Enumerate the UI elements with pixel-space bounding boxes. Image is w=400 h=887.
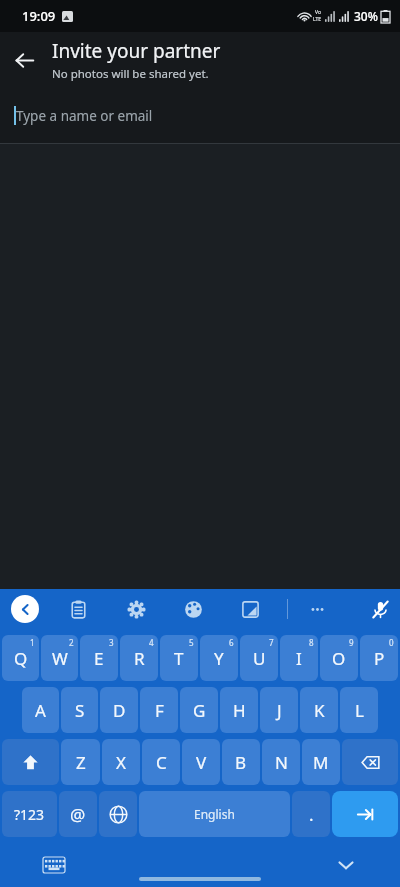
staticText: 0: [389, 637, 394, 648]
button[interactable]: U: [240, 635, 278, 681]
button[interactable]: F: [140, 687, 178, 733]
button[interactable]: C: [142, 739, 180, 785]
staticText: English: [194, 806, 235, 822]
button[interactable]: J: [260, 687, 298, 733]
button[interactable]: English: [139, 791, 290, 837]
button[interactable]: O: [320, 635, 358, 681]
staticText: F: [155, 699, 164, 722]
staticText: N: [275, 751, 288, 774]
button[interactable]: E: [80, 635, 118, 681]
button[interactable]: R: [120, 635, 158, 681]
button[interactable]: T: [160, 635, 198, 681]
staticText: V: [196, 751, 207, 774]
staticText: Vo: [315, 9, 321, 16]
staticText: LTE: [313, 16, 322, 23]
staticText: ?123: [14, 805, 45, 824]
button[interactable]: Type a name or email: [0, 88, 400, 143]
staticText: B: [235, 751, 247, 774]
button[interactable]: I: [280, 635, 318, 681]
button[interactable]: Previous: [11, 595, 39, 623]
button[interactable]: Shift: [2, 739, 59, 785]
staticText: 3: [109, 637, 114, 648]
staticText: 30%: [354, 8, 378, 24]
staticText: E: [94, 647, 104, 670]
button[interactable]: Z: [61, 739, 100, 785]
button[interactable]: Next: [332, 791, 398, 837]
staticText: H: [233, 699, 246, 722]
button[interactable]: G: [180, 687, 218, 733]
button[interactable]: N: [262, 739, 300, 785]
button[interactable]: K: [300, 687, 338, 733]
staticText: Y: [214, 647, 224, 670]
button[interactable]: Hide keyboard: [328, 847, 364, 883]
button[interactable]: Resize keyboard: [232, 591, 268, 627]
button[interactable]: S: [61, 687, 98, 733]
staticText: X: [116, 751, 126, 774]
button[interactable]: Switch keyboard: [36, 847, 72, 883]
staticText: .: [309, 803, 314, 826]
staticText: 8: [309, 637, 314, 648]
button[interactable]: L: [340, 687, 378, 733]
staticText: 5: [189, 637, 194, 648]
staticText: 9: [349, 637, 354, 648]
button[interactable]: D: [100, 687, 138, 733]
staticText: T: [174, 647, 184, 670]
staticText: 7: [269, 637, 274, 648]
button[interactable]: Backspace: [342, 739, 398, 785]
button[interactable]: V: [182, 739, 220, 785]
button[interactable]: W: [41, 635, 78, 681]
button[interactable]: Change language: [99, 791, 137, 837]
staticText: C: [156, 751, 167, 774]
button[interactable]: Clipboard: [60, 591, 96, 627]
staticText: @: [70, 803, 86, 826]
button[interactable]: Back: [0, 36, 48, 84]
staticText: Z: [76, 751, 86, 774]
button[interactable]: Microphone off: [362, 591, 398, 627]
staticText: J: [277, 699, 282, 722]
staticText: G: [193, 699, 206, 722]
button[interactable]: .: [292, 791, 330, 837]
staticText: A: [35, 699, 46, 722]
button[interactable]: Settings: [118, 591, 154, 627]
button[interactable]: Theme: [175, 591, 211, 627]
staticText: Type a name or email: [16, 107, 153, 125]
staticText: R: [134, 647, 145, 670]
staticText: M: [313, 751, 329, 774]
staticText: 6: [229, 637, 234, 648]
button[interactable]: P: [360, 635, 398, 681]
button[interactable]: @: [59, 791, 97, 837]
button[interactable]: A: [22, 687, 59, 733]
button[interactable]: H: [220, 687, 258, 733]
button[interactable]: X: [102, 739, 140, 785]
staticText: W: [52, 647, 68, 670]
staticText: O: [332, 647, 346, 670]
button[interactable]: M: [302, 739, 340, 785]
staticText: 1: [30, 637, 35, 648]
staticText: K: [314, 699, 325, 722]
staticText: 19:09: [22, 7, 56, 25]
button[interactable]: More options: [299, 591, 335, 627]
staticText: 4: [149, 637, 154, 648]
staticText: No photos will be shared yet.: [52, 66, 209, 82]
button[interactable]: B: [222, 739, 260, 785]
staticText: 2: [69, 637, 74, 648]
staticText: Invite your partner: [52, 38, 221, 64]
button[interactable]: ?123: [2, 791, 57, 837]
button[interactable]: Q: [2, 635, 39, 681]
staticText: U: [253, 647, 266, 670]
staticText: P: [374, 647, 385, 670]
button[interactable]: Y: [200, 635, 238, 681]
staticText: D: [113, 699, 126, 722]
staticText: Q: [14, 647, 28, 670]
staticText: L: [355, 699, 364, 722]
staticText: S: [75, 699, 85, 722]
staticText: I: [296, 647, 302, 670]
